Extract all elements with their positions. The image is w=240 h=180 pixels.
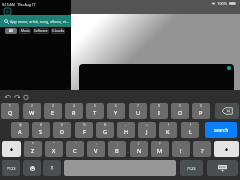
staticText: R (72, 109, 76, 117)
button[interactable]: Hide keyboard (207, 160, 238, 176)
staticText: 1 (9, 104, 11, 108)
button[interactable]: $ (53, 122, 71, 138)
button[interactable]: 6 (107, 103, 125, 119)
button[interactable]: ' (66, 141, 84, 157)
staticText: ?123 (7, 166, 16, 171)
button[interactable]: 4 (65, 103, 83, 119)
button[interactable]: : (87, 141, 105, 157)
staticText: / (138, 142, 140, 146)
button[interactable]: Music (19, 28, 31, 34)
staticText: 5 (94, 104, 96, 108)
staticText: V (94, 147, 98, 155)
staticText: E (51, 109, 55, 117)
button[interactable]: / (130, 141, 148, 157)
button[interactable] (0, 83, 71, 94)
staticText: Music (21, 29, 30, 33)
staticText: * (32, 142, 34, 146)
staticText: P (199, 109, 203, 117)
button[interactable]: Numbers (180, 160, 203, 176)
staticText: S (39, 128, 43, 136)
staticText: 9:15 AM Thu Aug 17 (2, 2, 36, 7)
button[interactable]: & (96, 122, 114, 138)
staticText: B (115, 147, 119, 155)
staticText: search (214, 127, 229, 133)
staticText: $ (61, 123, 63, 127)
staticText: All (9, 29, 13, 33)
button[interactable]: ( (159, 122, 177, 138)
button[interactable]: ? (193, 141, 211, 157)
button[interactable]: App name, artist, song, album, et… (0, 15, 71, 27)
staticText: 3 (52, 104, 54, 108)
staticText: L (189, 128, 192, 136)
staticText: K (166, 128, 170, 136)
staticText: A (18, 128, 22, 136)
staticText: O (178, 109, 183, 117)
button[interactable] (79, 64, 234, 90)
button[interactable]: ! (172, 141, 190, 157)
button[interactable]: 7 (129, 103, 147, 119)
staticText: 6 (115, 104, 117, 108)
staticText: App name, artist, song, album, et… (10, 19, 69, 24)
staticText: G (103, 128, 108, 136)
button[interactable]: 2 (23, 103, 41, 119)
staticText: X (52, 147, 56, 155)
staticText: 7 (137, 104, 139, 108)
button[interactable]: Undo (4, 93, 12, 101)
button[interactable]: E-books (51, 28, 65, 34)
button[interactable]: All (5, 28, 17, 34)
staticText: ' (75, 142, 76, 146)
staticText: " (53, 142, 55, 146)
staticText: ?123 (187, 166, 196, 171)
button[interactable]: ) (181, 122, 199, 138)
staticText: ; (117, 142, 118, 146)
staticText: W (29, 109, 35, 117)
button[interactable]: ; (108, 141, 126, 157)
button[interactable]: Voice input (43, 160, 61, 176)
staticText: 4 (73, 104, 75, 108)
staticText: + (146, 123, 148, 127)
button[interactable]: - (117, 122, 135, 138)
staticText: - (125, 123, 127, 127)
button[interactable]: search (205, 122, 237, 138)
staticText: 0 (200, 104, 202, 108)
staticText: ? (159, 142, 161, 146)
staticText: ? (201, 147, 204, 155)
button[interactable]: * (24, 141, 42, 157)
button[interactable]: Shift (2, 141, 21, 157)
button[interactable]: 0 (192, 103, 210, 119)
staticText: D (60, 128, 65, 136)
button[interactable]: Numbers (2, 160, 20, 176)
button[interactable]: Space (64, 160, 176, 176)
button[interactable]: ? (151, 141, 169, 157)
button[interactable]: 3 (44, 103, 62, 119)
staticText: H (124, 128, 129, 136)
button[interactable]: 8 (150, 103, 168, 119)
staticText: ) (190, 123, 191, 127)
staticText: 100% (217, 1, 228, 6)
button[interactable]: Software (33, 28, 49, 34)
button[interactable]: # (32, 122, 50, 138)
staticText: ! (180, 147, 182, 155)
staticText: & (104, 123, 107, 127)
button[interactable]: Clipboard (22, 93, 30, 101)
staticText: : (96, 142, 97, 146)
button[interactable]: + (138, 122, 156, 138)
button[interactable]: 5 (86, 103, 104, 119)
button[interactable]: @ (11, 122, 29, 138)
staticText: Z (31, 147, 35, 155)
button[interactable]: Emoji (23, 160, 41, 176)
button[interactable]: 9 (171, 103, 189, 119)
button[interactable]: Shift (214, 141, 239, 157)
staticText: Y (114, 109, 118, 117)
button[interactable]: Redo (13, 93, 21, 101)
button[interactable]: 1 (1, 103, 19, 119)
button[interactable]: " (45, 141, 63, 157)
button[interactable]: % (75, 122, 93, 138)
button[interactable]: Backspace (215, 103, 239, 119)
staticText: @ (19, 123, 22, 127)
staticText: 9 (179, 104, 181, 108)
